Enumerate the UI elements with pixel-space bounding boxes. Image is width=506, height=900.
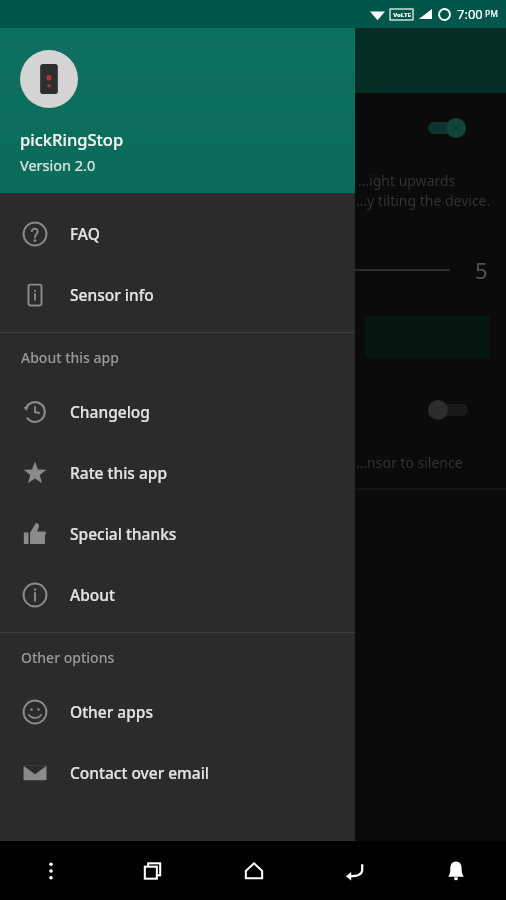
button[interactable]: Notifications [405, 841, 506, 900]
staticText: Rate this app [70, 462, 168, 483]
staticText: About this app [21, 348, 119, 367]
button[interactable]: Back [304, 841, 405, 900]
button[interactable]: Contact over email [0, 742, 355, 803]
button[interactable]: Recent apps [102, 841, 203, 900]
staticText: Version 2.0 [20, 155, 96, 175]
button[interactable]: More options [0, 841, 102, 900]
staticText: …ight upwards [358, 171, 456, 190]
staticText: Changelog [70, 401, 150, 422]
button[interactable]: Rate this app [0, 442, 355, 503]
button[interactable]: Sensor info [0, 264, 355, 325]
button[interactable]: Other apps [0, 681, 355, 742]
button[interactable]: About [0, 564, 355, 625]
staticText: …nsor to silence [356, 453, 463, 472]
staticText: Contact over email [70, 762, 210, 783]
staticText: pickRingStop [20, 128, 124, 150]
staticText: Sensor info [70, 284, 154, 305]
staticText: …y tilting the device. [356, 191, 491, 210]
staticText: Special thanks [70, 523, 177, 544]
button[interactable]: Home [203, 841, 304, 900]
staticText: 5 [475, 255, 488, 285]
staticText: FAQ [70, 223, 100, 244]
staticText: PM [485, 8, 498, 20]
staticText: VoLTE [393, 11, 411, 19]
staticText: Other options [21, 648, 115, 667]
button[interactable]: Changelog [0, 381, 355, 442]
button[interactable]: Special thanks [0, 503, 355, 564]
staticText: 7:00 [457, 5, 483, 23]
staticText: Other apps [70, 701, 153, 722]
staticText: About [70, 584, 115, 605]
button[interactable]: FAQ [0, 203, 355, 264]
